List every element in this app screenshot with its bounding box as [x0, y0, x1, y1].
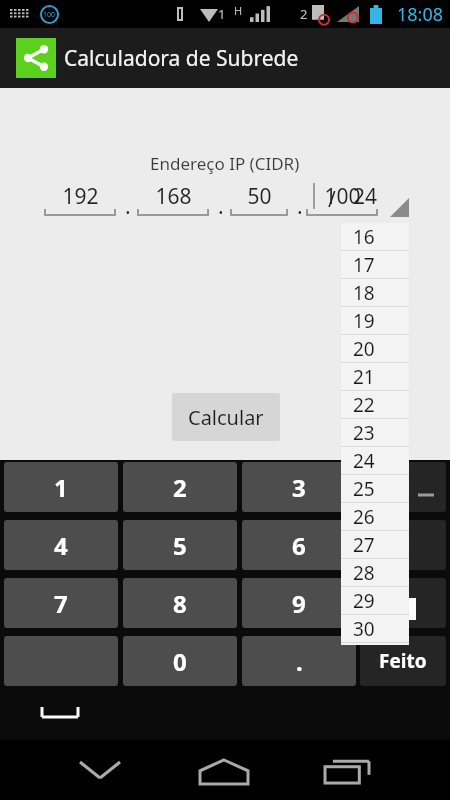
button[interactable]: 23	[341, 419, 409, 447]
staticText: .	[296, 645, 303, 678]
staticText: Feito	[379, 648, 427, 674]
staticText: 192	[62, 182, 99, 211]
staticText: Calculadora de Subrede	[64, 44, 299, 73]
staticText: 1	[218, 5, 226, 23]
staticText: .	[125, 192, 131, 221]
staticText: 28	[353, 560, 375, 586]
staticText: 100	[43, 10, 56, 20]
button[interactable]: 22	[341, 391, 409, 419]
staticText: 25	[353, 476, 375, 502]
staticText: 0	[173, 645, 187, 678]
staticText: 29	[353, 588, 375, 614]
button[interactable]: 24	[345, 178, 411, 218]
button[interactable]: Recents	[325, 760, 369, 784]
staticText: 3	[292, 471, 306, 504]
button[interactable]: 16	[341, 223, 409, 251]
staticText: 27	[353, 532, 375, 558]
staticText: H	[234, 3, 243, 18]
staticText: 7	[54, 587, 68, 620]
staticText: 1	[54, 471, 68, 504]
button[interactable]: 24	[341, 447, 409, 475]
staticText: 168	[155, 182, 192, 211]
staticText: 18	[353, 280, 375, 306]
button[interactable]: 1	[4, 462, 118, 512]
staticText: 20	[353, 336, 375, 362]
button[interactable]: Home	[200, 760, 248, 784]
staticText: Endereço IP (CIDR)	[150, 152, 300, 175]
button[interactable]: 20	[341, 335, 409, 363]
button[interactable]: 50	[230, 182, 288, 216]
staticText: 24	[353, 448, 375, 474]
button[interactable]: 29	[341, 587, 409, 615]
staticText: 5	[173, 529, 187, 562]
other: Backspace	[392, 598, 416, 620]
button[interactable]: 27	[341, 531, 409, 559]
staticText: 26	[353, 504, 375, 530]
button[interactable]	[360, 636, 446, 686]
staticText: 18:08	[397, 2, 444, 27]
button[interactable]: 26	[341, 503, 409, 531]
button[interactable]: 19	[341, 307, 409, 335]
button[interactable]: 4	[4, 520, 118, 570]
button[interactable]: 6	[242, 520, 356, 570]
staticText: .	[297, 192, 303, 221]
button[interactable]: 25	[341, 475, 409, 503]
button[interactable]: 5	[123, 520, 237, 570]
button[interactable]	[360, 462, 446, 512]
button[interactable]: App icon	[16, 38, 56, 78]
button[interactable]: Back	[80, 762, 120, 778]
staticText: 17	[353, 252, 375, 278]
staticText: 2	[300, 5, 308, 23]
button[interactable]: 0	[123, 636, 237, 686]
staticText: .	[218, 192, 224, 221]
staticText: 50	[247, 182, 272, 211]
staticText: 21	[353, 364, 375, 390]
button[interactable]: 18	[341, 279, 409, 307]
button[interactable]: 168	[137, 182, 209, 216]
button[interactable]: 28	[341, 559, 409, 587]
staticText: 30	[353, 616, 375, 642]
button[interactable]	[360, 578, 446, 628]
button[interactable]: 8	[123, 578, 237, 628]
button[interactable]: Calcular	[172, 393, 280, 441]
staticText: 19	[353, 308, 375, 334]
staticText: 2	[173, 471, 187, 504]
staticText: 4	[54, 529, 68, 562]
other: Space	[42, 707, 78, 717]
staticText: 24	[353, 182, 378, 211]
staticText: 6	[292, 529, 306, 562]
button[interactable]: .	[242, 636, 356, 686]
button[interactable]	[360, 520, 446, 570]
button[interactable]: 30	[341, 615, 409, 643]
staticText: /	[328, 185, 336, 214]
button[interactable]: 3	[242, 462, 356, 512]
staticText: 22	[353, 392, 375, 418]
button[interactable]: 7	[4, 578, 118, 628]
staticText: 23	[353, 420, 375, 446]
button[interactable]: 9	[242, 578, 356, 628]
button[interactable]: 192	[44, 182, 116, 216]
button[interactable]: Feito	[360, 636, 446, 686]
staticText: 16	[353, 224, 375, 250]
staticText: 8	[173, 587, 187, 620]
button[interactable]: 100	[306, 182, 378, 216]
button[interactable]: 2	[123, 462, 237, 512]
staticText: 100	[324, 182, 361, 211]
button[interactable]: 21	[341, 363, 409, 391]
staticText: Calcular	[188, 404, 264, 431]
staticText: 9	[292, 587, 306, 620]
button[interactable]: 17	[341, 251, 409, 279]
